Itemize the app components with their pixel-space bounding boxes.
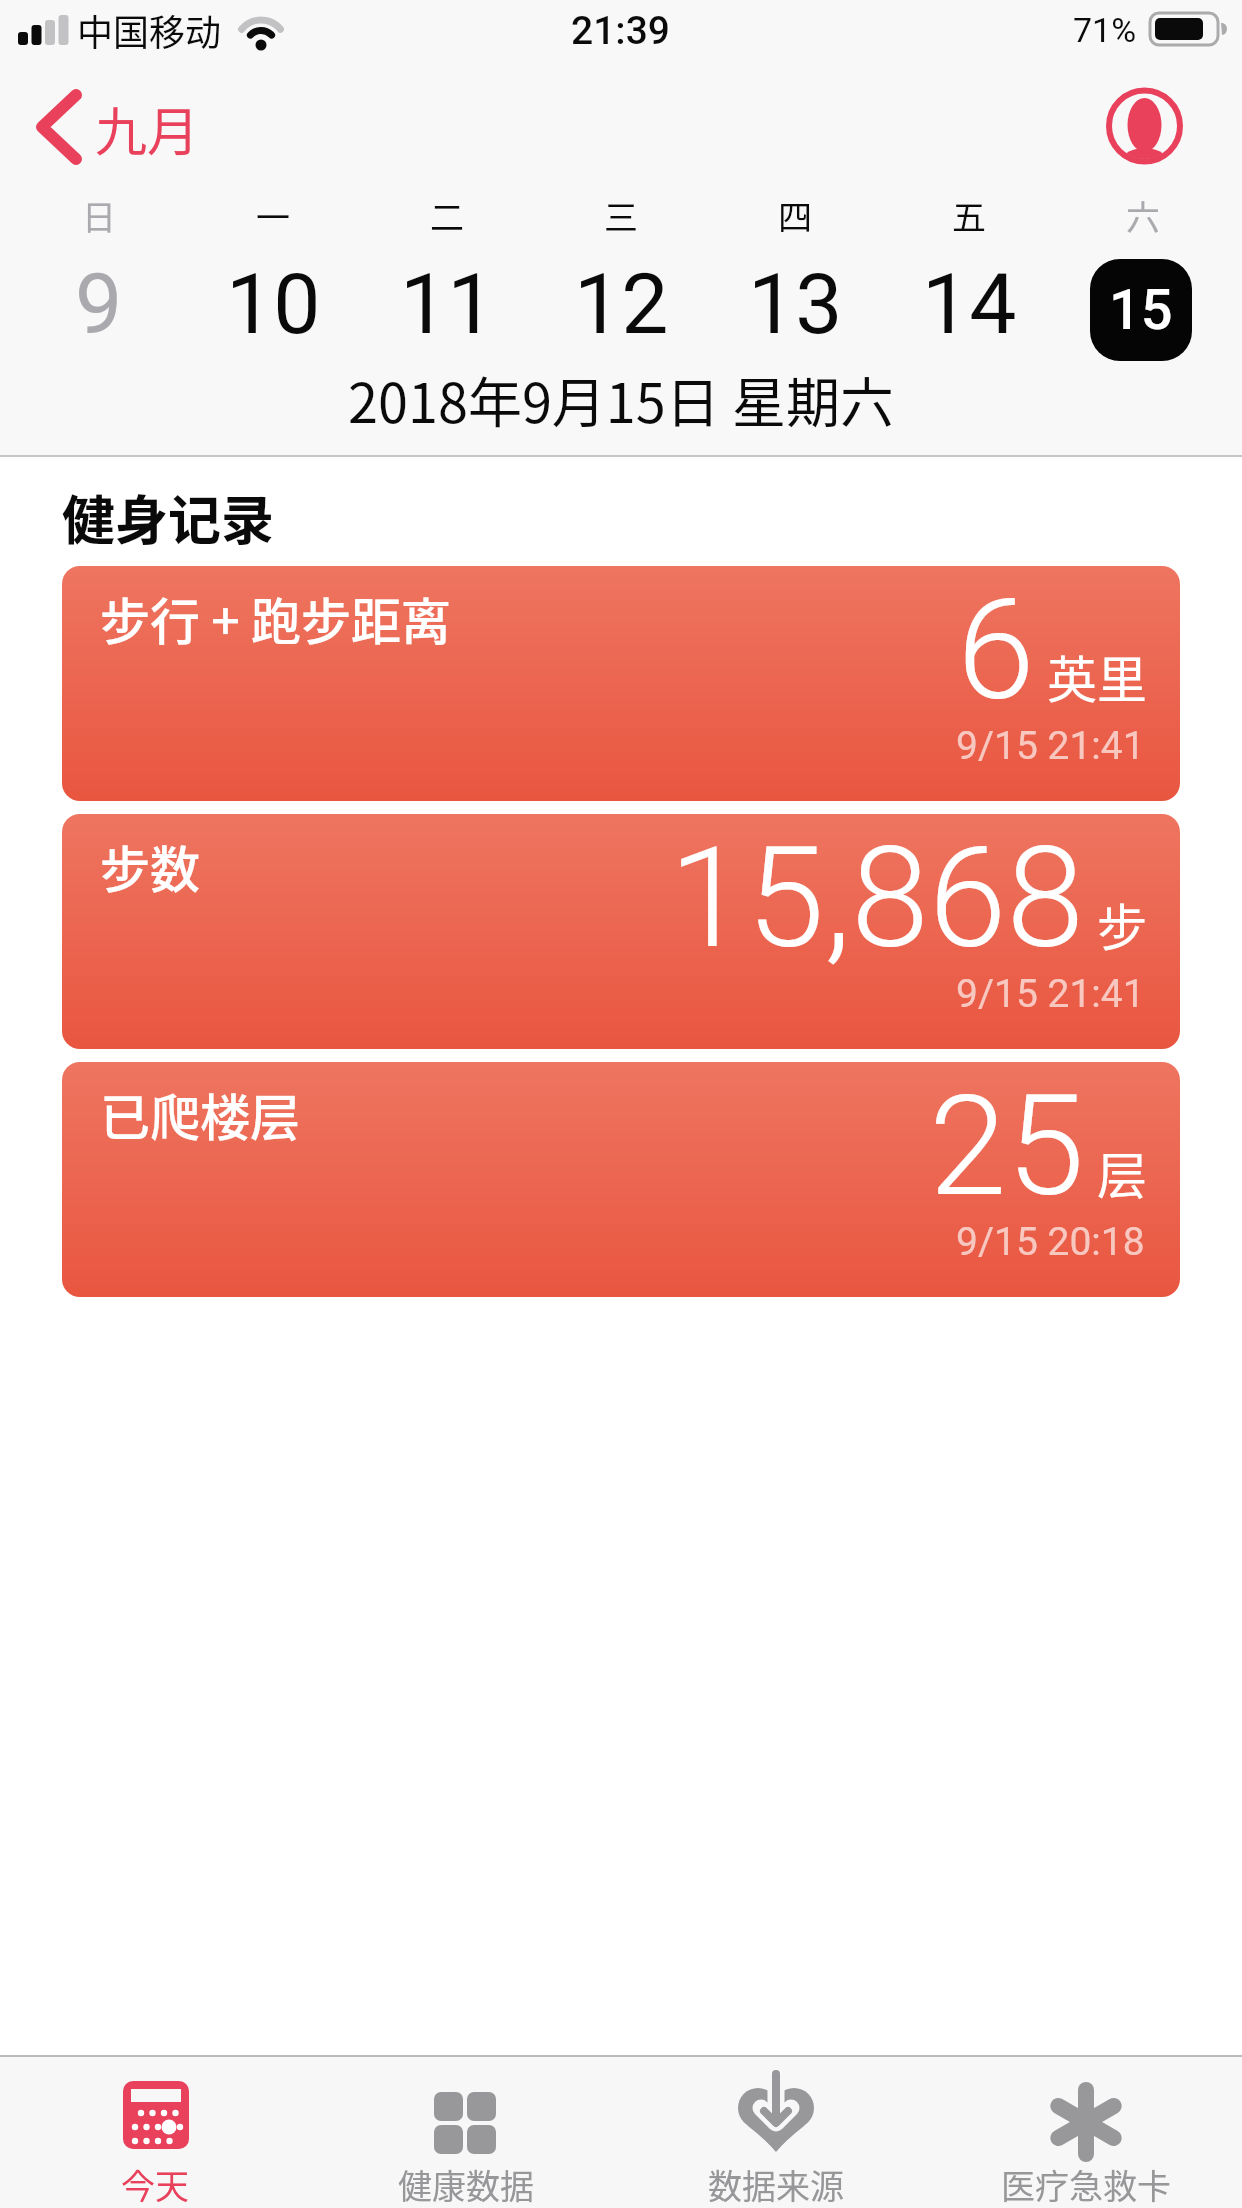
staticText: 21:39: [571, 8, 671, 54]
staticText: 2018年9月15日 星期六: [348, 360, 894, 438]
staticText: 三: [604, 191, 638, 240]
staticText: 中国移动: [77, 4, 222, 56]
button[interactable]: [311, 2057, 621, 2208]
staticText: 健康数据: [398, 2160, 534, 2208]
staticText: 11: [400, 255, 495, 353]
staticText: 已爬楼层: [100, 1078, 300, 1150]
button[interactable]: [621, 2057, 931, 2208]
staticText: 13: [748, 255, 843, 353]
staticText: 6: [957, 568, 1035, 732]
button[interactable]: [20, 90, 260, 175]
button[interactable]: 步行 + 跑步距离: [62, 566, 1180, 801]
staticText: 今天: [121, 2160, 189, 2208]
staticText: 五: [952, 191, 986, 240]
staticText: 15,868: [669, 816, 1085, 980]
staticText: 15: [1109, 277, 1173, 343]
staticText: 9: [75, 255, 123, 353]
staticText: 层: [1097, 1136, 1147, 1208]
staticText: 医疗急救卡: [1001, 2160, 1171, 2208]
staticText: 健身记录: [62, 479, 274, 556]
button[interactable]: 15: [1090, 259, 1192, 361]
staticText: 25: [929, 1064, 1085, 1228]
staticText: 步数: [100, 830, 200, 902]
staticText: 九月: [95, 91, 200, 166]
staticText: 步: [1097, 888, 1147, 960]
staticText: 数据来源: [708, 2160, 844, 2208]
staticText: 步行 + 跑步距离: [100, 582, 451, 654]
button[interactable]: 已爬楼层: [62, 1062, 1180, 1297]
button[interactable]: [0, 2057, 310, 2208]
staticText: 一: [256, 191, 290, 240]
staticText: 12: [574, 255, 669, 353]
staticText: 四: [778, 191, 812, 240]
staticText: 日: [82, 191, 116, 240]
staticText: 9/15 21:41: [956, 723, 1145, 769]
button[interactable]: [1102, 84, 1188, 170]
button[interactable]: 步数: [62, 814, 1180, 1049]
staticText: 10: [226, 255, 321, 353]
staticText: 英里: [1047, 640, 1147, 712]
staticText: 9/15 21:41: [956, 971, 1145, 1017]
staticText: 71%: [1073, 10, 1137, 50]
staticText: 9/15 20:18: [956, 1219, 1145, 1265]
staticText: 二: [430, 191, 464, 240]
button[interactable]: [932, 2057, 1242, 2208]
staticText: 六: [1126, 191, 1160, 240]
staticText: 14: [922, 255, 1017, 353]
